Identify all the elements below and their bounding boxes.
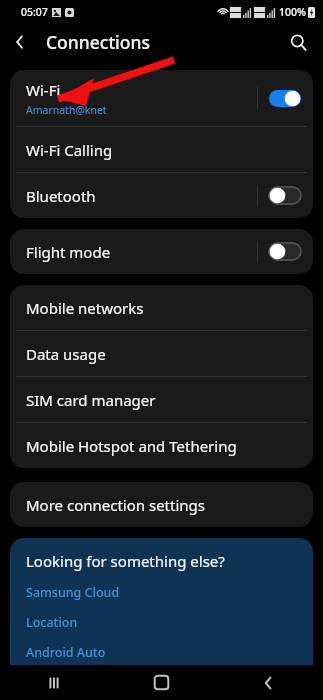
staticText: Wi-Fi Calling <box>26 140 113 160</box>
staticText: Samsung Cloud <box>26 584 120 601</box>
button[interactable]: Back <box>0 24 40 60</box>
staticText: Android Auto <box>26 644 106 661</box>
button[interactable]: Data usage <box>10 331 313 376</box>
button[interactable]: Flight mode <box>10 229 313 274</box>
staticText: Flight mode <box>26 242 111 262</box>
button[interactable]: SIM card manager <box>10 377 313 422</box>
button[interactable]: Bluetooth <box>10 173 313 218</box>
staticText: Connections <box>46 30 150 54</box>
staticText: Bluetooth <box>26 186 96 206</box>
staticText: Data usage <box>26 344 106 364</box>
button[interactable]: Android Auto <box>10 643 313 662</box>
button[interactable]: Mobile networks <box>10 285 313 330</box>
staticText: Wi-Fi <box>26 80 61 100</box>
button[interactable]: Wi-Fi <box>10 70 313 126</box>
staticText: Amarnath@knet <box>26 103 107 117</box>
staticText: Location <box>26 614 78 631</box>
button[interactable]: More connection settings <box>10 482 313 527</box>
button[interactable]: Wi-Fi on <box>269 90 301 107</box>
staticText: SIM card manager <box>26 390 156 410</box>
button[interactable]: Search <box>279 24 317 60</box>
button[interactable]: Flight mode off <box>269 243 301 260</box>
button[interactable]: Mobile Hotspot and Tethering <box>10 423 313 468</box>
button[interactable]: Home <box>107 665 215 700</box>
button[interactable]: Back <box>215 665 323 700</box>
button[interactable]: Wi-Fi Calling <box>10 127 313 172</box>
button[interactable]: Samsung Cloud <box>10 583 313 602</box>
staticText: More connection settings <box>26 495 205 515</box>
staticText: Mobile networks <box>26 298 144 318</box>
staticText: Mobile Hotspot and Tethering <box>26 436 237 456</box>
staticText: 100% <box>279 5 306 19</box>
button[interactable]: Bluetooth off <box>269 187 301 204</box>
staticText: 05:07 <box>21 5 48 19</box>
button[interactable]: Location <box>10 613 313 632</box>
staticText: Looking for something else? <box>26 551 225 571</box>
button[interactable]: Recent apps <box>0 665 107 700</box>
